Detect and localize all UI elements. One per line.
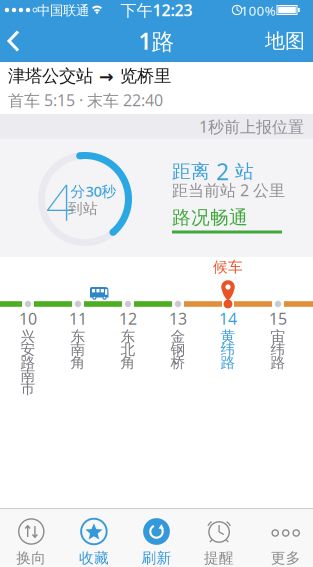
button[interactable]: 返回 (0, 24, 30, 58)
button[interactable]: 地图 (265, 29, 313, 53)
staticText: 钢 (170, 340, 185, 358)
staticText: 兴 (20, 327, 35, 345)
staticText: 11 (69, 308, 87, 329)
staticText: 安 (20, 340, 35, 358)
staticText: 提醒 (204, 549, 234, 567)
staticText: 中国联通 (37, 2, 89, 19)
staticText: 4 (45, 167, 74, 235)
staticText: 津塔公交站 → 览桥里 (8, 65, 171, 86)
staticText: 100% (240, 2, 275, 19)
staticText: 纬 (270, 340, 285, 358)
staticText: 角 (70, 353, 85, 371)
staticText: 北 (120, 340, 135, 358)
staticText: 13 (169, 308, 187, 329)
staticText: 站 (229, 160, 254, 183)
staticText: 到站 (68, 199, 98, 217)
staticText: 10 (19, 308, 37, 329)
staticText: 14 (219, 308, 237, 329)
staticText: 1秒前上报位置 (199, 116, 304, 137)
staticText: 收藏 (79, 549, 109, 567)
staticText: 市 (20, 379, 35, 397)
staticText: 桥 (170, 353, 185, 371)
staticText: 15 (269, 308, 287, 329)
staticText: 刷新 (141, 549, 171, 567)
staticText: 换向 (16, 549, 46, 567)
staticText: 路 (220, 353, 235, 371)
staticText: 首车 5:15 · 末车 22:40 (8, 89, 163, 111)
staticText: 东 (120, 327, 135, 345)
button[interactable]: 刷新 (125, 508, 188, 567)
staticText: 路 (270, 353, 285, 371)
staticText: 1路 (138, 26, 174, 56)
staticText: 分30秒 (70, 181, 116, 201)
staticText: 金 (170, 327, 185, 345)
staticText: 南 (20, 366, 35, 384)
staticText: 更多 (271, 549, 301, 567)
staticText: 地图 (265, 29, 305, 53)
button[interactable]: 收藏 (63, 508, 125, 567)
button[interactable]: 更多 (254, 508, 313, 567)
staticText: 东 (70, 327, 85, 345)
staticText: 宙 (270, 327, 285, 345)
staticText: 黄 (220, 327, 235, 345)
staticText: 12 (119, 308, 137, 329)
staticText: 南 (70, 340, 85, 358)
staticText: 角 (120, 353, 135, 371)
button[interactable]: 提醒 (188, 508, 250, 567)
staticText: 路 (20, 353, 35, 371)
staticText: 下午12:23 (120, 0, 192, 21)
staticText: 纬 (220, 340, 235, 358)
button[interactable]: 换向 (0, 508, 63, 567)
staticText: 2 (216, 156, 229, 186)
staticText: 路况畅通 (172, 206, 248, 229)
staticText: 候车 (213, 258, 243, 276)
staticText: 距离 (172, 160, 216, 183)
staticText: 距当前站 2 公里 (172, 179, 285, 201)
